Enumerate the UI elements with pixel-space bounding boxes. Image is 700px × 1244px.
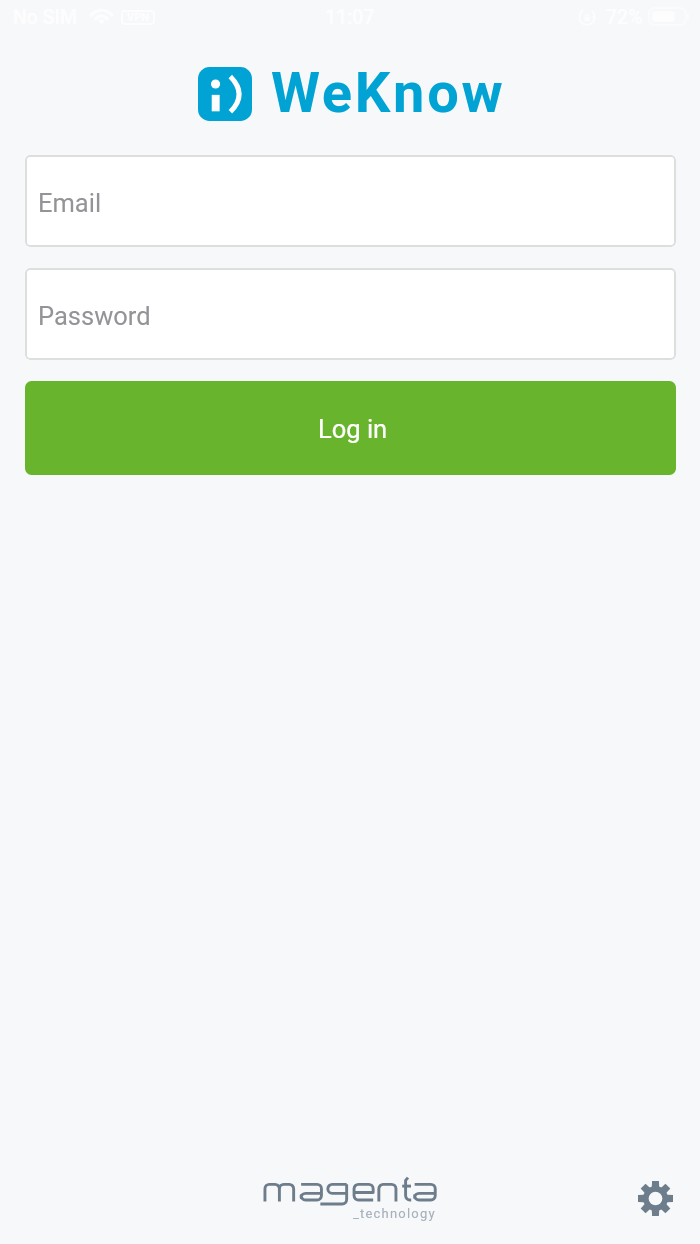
button[interactable]: Password xyxy=(25,268,676,360)
staticText: WeKnow xyxy=(271,60,506,126)
button[interactable]: Settings xyxy=(631,1174,679,1222)
button[interactable]: Email xyxy=(25,155,676,247)
staticText: Password xyxy=(38,301,151,331)
staticText: Log in xyxy=(318,414,388,444)
staticText: Email xyxy=(38,188,102,218)
button[interactable]: Log in xyxy=(25,381,676,475)
staticText: _technology xyxy=(353,1206,436,1221)
